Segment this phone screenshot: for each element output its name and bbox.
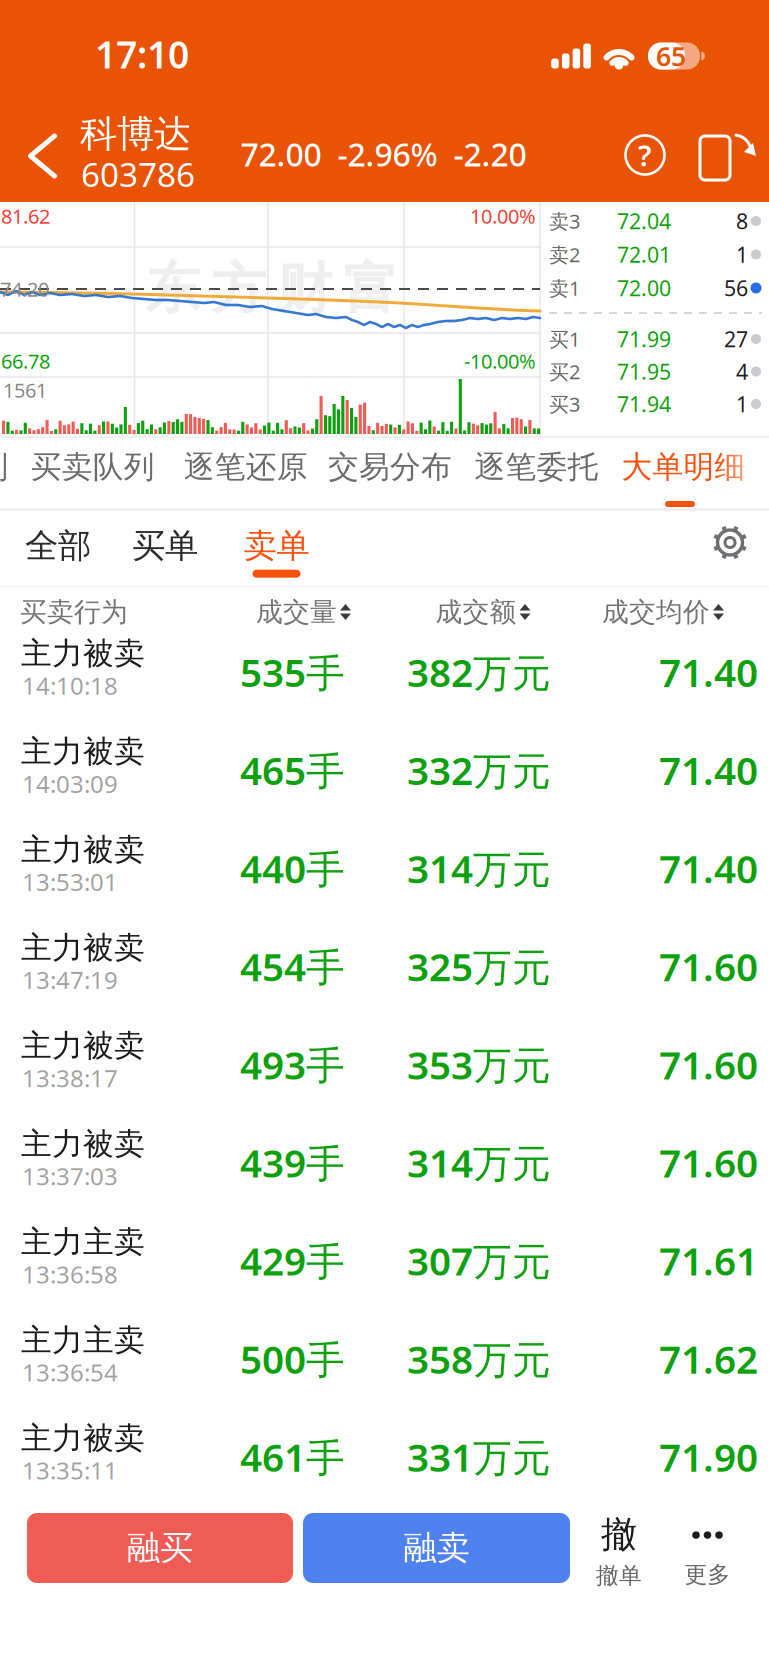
staticText: 8 bbox=[736, 207, 748, 235]
button[interactable]: 成交额 bbox=[431, 592, 534, 632]
staticText: 卖3 bbox=[549, 208, 580, 234]
staticText: 461手 bbox=[240, 1431, 345, 1482]
staticText: 65 bbox=[656, 38, 686, 74]
staticText: 主力被卖 bbox=[21, 831, 145, 869]
staticText: 81.62 bbox=[1, 203, 50, 229]
staticText: 卖2 bbox=[549, 241, 580, 268]
button[interactable]: 逐笔还原 bbox=[178, 442, 314, 492]
staticText: 13:35:11 bbox=[22, 1454, 118, 1486]
staticText: 72.00 bbox=[617, 274, 671, 302]
staticText: 72.00 -2.96% -2.20 bbox=[240, 133, 526, 175]
staticText: 更多 bbox=[684, 1561, 730, 1589]
staticText: 71.60 bbox=[659, 1137, 758, 1188]
button[interactable]: 成交量 bbox=[252, 592, 355, 632]
staticText: 382万元 bbox=[407, 646, 551, 698]
staticText: 71.95 bbox=[617, 357, 671, 386]
staticText: ? bbox=[638, 135, 652, 174]
staticText: 1561 bbox=[3, 377, 47, 403]
staticText: 332万元 bbox=[407, 744, 551, 796]
staticText: 13:47:19 bbox=[22, 964, 118, 996]
staticText: 成交量 bbox=[256, 596, 337, 628]
staticText: 买卖队列 bbox=[31, 448, 155, 486]
staticText: 大单明细 bbox=[621, 448, 745, 486]
staticText: 13:38:17 bbox=[22, 1062, 118, 1094]
staticText: 314万元 bbox=[407, 842, 551, 894]
button[interactable]: 撤 bbox=[596, 1512, 642, 1590]
staticText: 1 bbox=[736, 390, 748, 418]
staticText: 535手 bbox=[240, 646, 345, 698]
button[interactable]: 融买 bbox=[27, 1513, 293, 1583]
staticText: 74.20 bbox=[0, 276, 49, 302]
staticText: 成交均价 bbox=[602, 596, 710, 628]
staticText: 493手 bbox=[240, 1039, 345, 1090]
staticText: 逐笔还原 bbox=[184, 448, 308, 486]
staticText: 主力被卖 bbox=[21, 733, 145, 770]
staticText: 主力主卖 bbox=[21, 1223, 145, 1261]
staticText: 13:36:54 bbox=[22, 1356, 118, 1388]
staticText: 454手 bbox=[240, 941, 345, 992]
staticText: 13:53:01 bbox=[22, 866, 118, 898]
staticText: 500手 bbox=[240, 1333, 345, 1384]
staticText: 56 bbox=[724, 274, 748, 302]
staticText: 买2 bbox=[549, 358, 580, 385]
button[interactable]: 融卖 bbox=[303, 1513, 570, 1583]
staticText: -10.00% bbox=[464, 348, 536, 374]
staticText: 71.94 bbox=[617, 390, 671, 418]
button[interactable]: More bbox=[684, 1531, 730, 1589]
staticText: 71.40 bbox=[659, 842, 758, 894]
staticText: 买1 bbox=[549, 326, 580, 352]
staticText: 14:10:18 bbox=[22, 670, 118, 701]
staticText: 1 bbox=[736, 240, 748, 269]
button[interactable]: Back bbox=[19, 125, 65, 187]
button[interactable]: Help bbox=[623, 133, 667, 177]
staticText: 交易分布 bbox=[328, 448, 452, 486]
staticText: 主力被卖 bbox=[21, 1125, 145, 1163]
staticText: 卖1 bbox=[549, 275, 580, 301]
staticText: 东方财富 bbox=[145, 255, 398, 322]
staticText: 358万元 bbox=[407, 1333, 551, 1384]
staticText: 71.60 bbox=[659, 1039, 758, 1090]
staticText: 买单 bbox=[132, 525, 198, 566]
staticText: 买卖行为 bbox=[20, 596, 128, 628]
button[interactable]: Settings bbox=[708, 520, 752, 564]
staticText: 314万元 bbox=[407, 1137, 551, 1188]
staticText: 买3 bbox=[549, 391, 580, 417]
button[interactable]: Landscape chart bbox=[698, 130, 756, 182]
staticText: 325万元 bbox=[407, 941, 551, 992]
staticText: 71.40 bbox=[659, 646, 758, 698]
staticText: 撤 bbox=[601, 1512, 637, 1557]
staticText: 72.01 bbox=[617, 240, 671, 269]
staticText: 66.78 bbox=[1, 348, 50, 374]
staticText: 列 bbox=[0, 448, 8, 486]
staticText: 353万元 bbox=[407, 1039, 551, 1090]
staticText: 71.40 bbox=[659, 744, 758, 796]
staticText: 主力被卖 bbox=[21, 1027, 145, 1065]
button[interactable]: 买单 bbox=[124, 517, 206, 574]
staticText: 13:36:58 bbox=[22, 1258, 118, 1290]
staticText: 全部 bbox=[25, 525, 91, 566]
staticText: 主力被卖 bbox=[21, 1419, 145, 1457]
button[interactable]: 全部 bbox=[17, 517, 99, 574]
staticText: 主力主卖 bbox=[21, 1321, 145, 1359]
staticText: 440手 bbox=[240, 842, 345, 894]
staticText: 科博达 bbox=[80, 111, 191, 157]
staticText: 331万元 bbox=[407, 1431, 551, 1482]
button[interactable]: 交易分布 bbox=[322, 442, 458, 492]
staticText: 72.04 bbox=[617, 207, 671, 235]
staticText: 603786 bbox=[81, 152, 195, 196]
staticText: 429手 bbox=[240, 1235, 345, 1286]
staticText: 4 bbox=[736, 357, 748, 386]
button[interactable]: 卖单 bbox=[235, 517, 317, 574]
staticText: 465手 bbox=[240, 744, 345, 796]
button[interactable]: 买卖队列 bbox=[25, 442, 161, 492]
button[interactable]: 成交均价 bbox=[598, 592, 728, 632]
staticText: 成交额 bbox=[435, 596, 516, 628]
staticText: 439手 bbox=[240, 1137, 345, 1188]
staticText: 10.00% bbox=[470, 203, 536, 229]
staticText: 14:03:09 bbox=[22, 768, 118, 800]
staticText: 主力被卖 bbox=[21, 635, 145, 672]
staticText: 71.62 bbox=[659, 1333, 758, 1384]
staticText: 71.61 bbox=[659, 1235, 758, 1286]
button[interactable]: 大单明细 bbox=[615, 442, 751, 492]
button[interactable]: 逐笔委托 bbox=[468, 442, 604, 492]
